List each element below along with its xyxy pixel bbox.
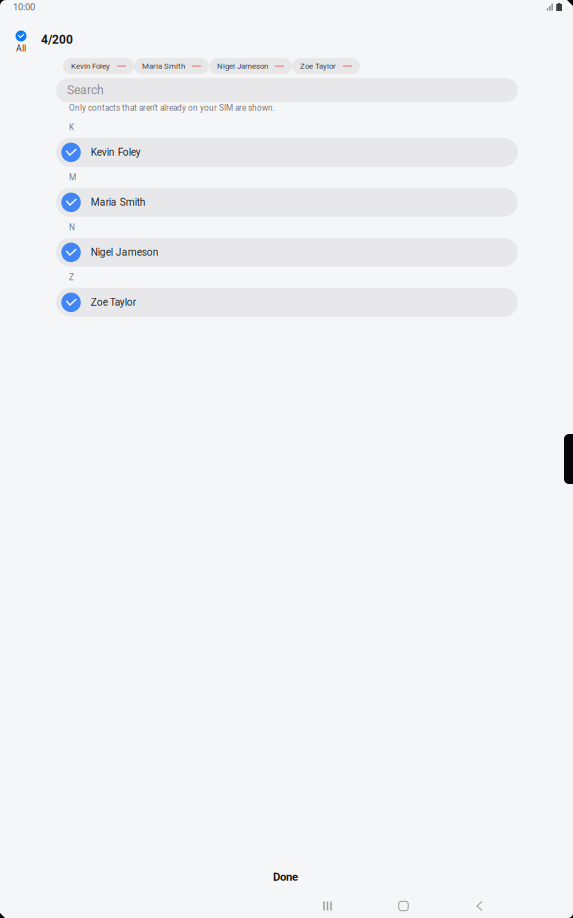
button[interactable]: Nigel Jameson xyxy=(56,238,518,267)
staticText: N xyxy=(69,222,75,232)
button[interactable]: Back xyxy=(441,897,517,915)
staticText: Only contacts that aren't already on you… xyxy=(69,103,275,113)
button[interactable]: Maria Smith xyxy=(56,188,518,217)
button[interactable]: Zoe Taylor xyxy=(292,58,360,74)
staticText: K xyxy=(69,122,74,132)
staticText: Z xyxy=(69,272,74,282)
button[interactable]: Kevin Foley xyxy=(63,58,134,74)
staticText: Search xyxy=(67,83,104,97)
staticText: Done xyxy=(273,870,298,884)
button[interactable]: Maria Smith xyxy=(134,58,209,74)
staticText: Maria Smith xyxy=(91,196,146,208)
staticText: Nigel Jameson xyxy=(91,246,159,258)
button[interactable]: Home xyxy=(365,897,441,915)
staticText: All xyxy=(16,43,26,54)
button[interactable]: Done xyxy=(0,868,573,886)
staticText: Zoe Taylor xyxy=(91,296,136,308)
staticText: 10:00 xyxy=(13,1,35,12)
button[interactable]: Recent apps xyxy=(289,897,365,915)
staticText: M xyxy=(69,172,76,182)
button[interactable]: Zoe Taylor xyxy=(56,288,518,317)
staticText: Kevin Foley xyxy=(71,61,110,71)
staticText: 4/200 xyxy=(41,32,73,47)
staticText: Nigel Jameson xyxy=(217,61,268,71)
button[interactable]: Nigel Jameson xyxy=(209,58,292,74)
button[interactable]: Search xyxy=(56,78,518,102)
staticText: Zoe Taylor xyxy=(300,61,336,71)
staticText: Kevin Foley xyxy=(91,146,141,158)
button[interactable]: Select all xyxy=(0,30,34,54)
staticText: Maria Smith xyxy=(142,61,185,71)
button[interactable]: Kevin Foley xyxy=(56,138,518,167)
